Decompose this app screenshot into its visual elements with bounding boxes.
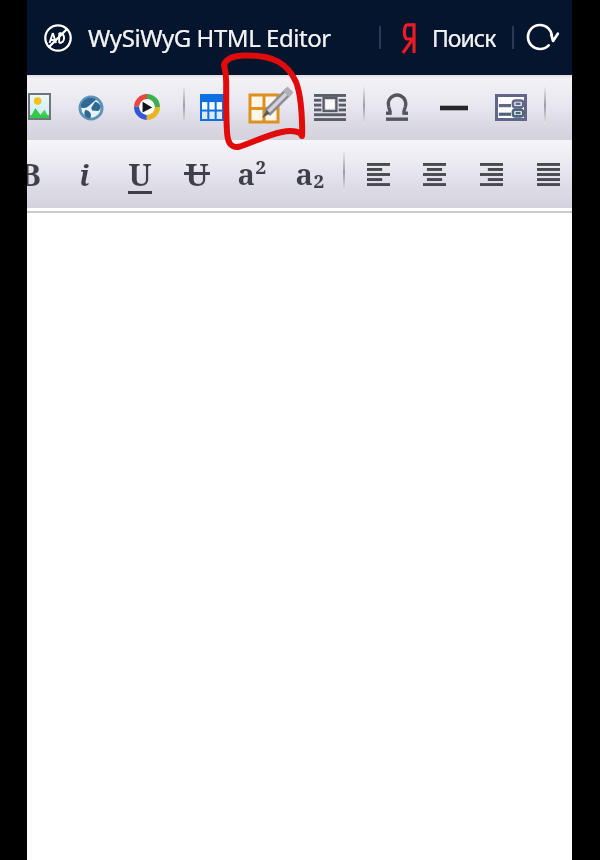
button[interactable]: B xyxy=(8,150,52,198)
button[interactable]: Align center xyxy=(423,163,446,186)
button[interactable]: Insert media xyxy=(134,94,160,120)
staticText: a₂ xyxy=(295,154,325,193)
staticText: U xyxy=(128,153,152,195)
button[interactable]: U xyxy=(175,150,219,198)
button[interactable]: Insert table xyxy=(200,94,224,121)
button[interactable]: Refresh xyxy=(523,20,557,54)
button[interactable]: Edit table xyxy=(249,87,294,124)
staticText: a² xyxy=(237,154,267,193)
button[interactable]: i xyxy=(62,150,106,198)
button[interactable]: Insert form xyxy=(495,94,527,121)
button[interactable]: Text wrap xyxy=(314,94,346,121)
button[interactable]: Align right xyxy=(480,163,503,186)
staticText: B xyxy=(20,153,41,195)
button[interactable]: Insert image xyxy=(28,93,51,120)
staticText: WySiWyG HTML Editor xyxy=(88,21,331,54)
button[interactable] xyxy=(398,14,498,60)
button[interactable]: Поиск xyxy=(432,22,496,52)
button[interactable]: a₂ xyxy=(288,149,332,197)
button[interactable]: Justify xyxy=(537,163,560,186)
staticText: i xyxy=(79,155,90,194)
button[interactable]: Horizontal rule xyxy=(440,102,468,114)
button[interactable]: Align left xyxy=(367,163,390,186)
button[interactable]: Block ads xyxy=(42,22,74,54)
button[interactable]: Special character xyxy=(386,95,408,121)
button[interactable]: U xyxy=(118,150,162,198)
button[interactable]: a² xyxy=(230,149,274,197)
button[interactable]: WySiWyG HTML Editor xyxy=(88,21,331,55)
staticText: U xyxy=(185,153,209,195)
button[interactable]: Browser preview xyxy=(79,96,103,120)
staticText: Поиск xyxy=(432,22,496,52)
